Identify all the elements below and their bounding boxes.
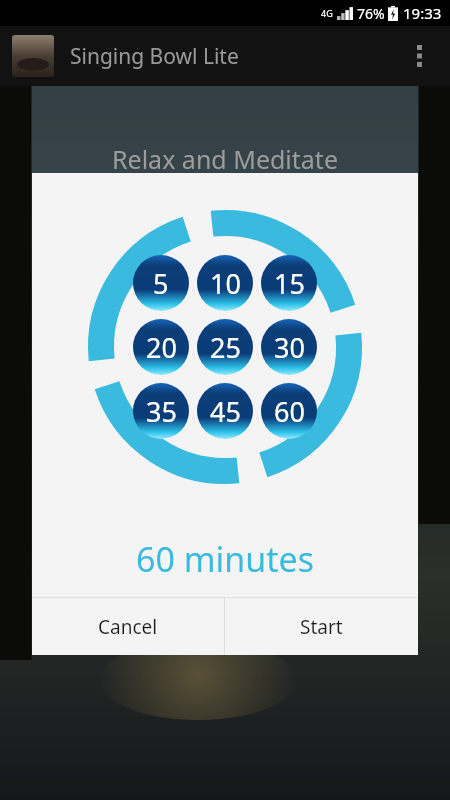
button[interactable]: 25 [197, 319, 253, 375]
staticText: Start [300, 614, 343, 640]
button[interactable]: 15 [261, 255, 317, 311]
staticText: 60 minutes [136, 536, 315, 582]
staticText: 60 [274, 393, 305, 430]
staticText: 5 [153, 265, 169, 302]
staticText: Singing Bowl Lite [70, 42, 239, 71]
button[interactable]: Cancel [32, 598, 224, 655]
staticText: Relax and Meditate [0, 142, 450, 176]
staticText: 10 [210, 265, 241, 302]
staticText: 35 [146, 393, 177, 430]
button[interactable]: 45 [197, 383, 253, 439]
staticText: 4G [321, 7, 333, 19]
button[interactable]: 60 [261, 383, 317, 439]
staticText: 45 [210, 393, 241, 430]
button[interactable]: 10 [197, 255, 253, 311]
button[interactable]: 35 [133, 383, 189, 439]
button[interactable]: Start [225, 598, 418, 655]
staticText: Cancel [98, 614, 158, 640]
staticText: 30 [274, 329, 305, 366]
staticText: 76% [357, 4, 385, 23]
staticText: 15 [274, 265, 305, 302]
staticText: 19:33 [403, 3, 442, 23]
button[interactable]: More options [400, 37, 438, 75]
staticText: 25 [210, 329, 241, 366]
button[interactable]: 5 [133, 255, 189, 311]
button[interactable]: 20 [133, 319, 189, 375]
button[interactable]: 30 [261, 319, 317, 375]
button[interactable]: App icon [12, 35, 54, 77]
staticText: 20 [146, 329, 177, 366]
